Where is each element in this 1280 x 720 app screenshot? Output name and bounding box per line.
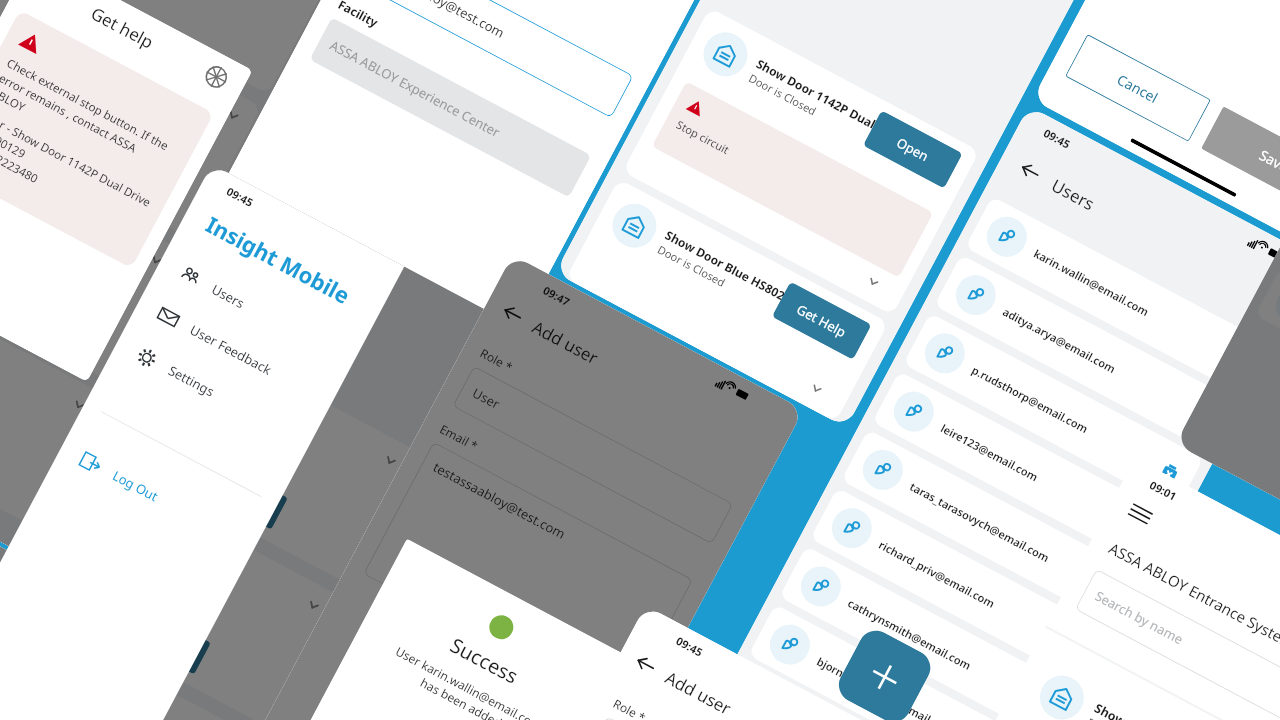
button[interactable]: Show Door 1142P Dual Drive [622,7,980,315]
staticText: Check external stop button. If the error… [0,55,181,188]
button[interactable]: Users [150,240,364,383]
staticText: Get help [87,1,158,54]
button[interactable]: Back [632,651,659,678]
staticText: bjorn.markstedt@email.com [814,653,956,720]
button[interactable]: Delete user [1156,460,1182,486]
staticText: Add user [528,315,603,369]
staticText: Role * [478,344,516,375]
staticText: No: 112223480 [0,135,41,187]
staticText: Save [1256,145,1280,177]
staticText: Show Door 1142P Dual Drive [754,55,910,148]
button[interactable]: Show Door Blue HS8020P [565,179,889,422]
staticText: Role * [611,695,649,720]
staticText: SC2_00129 [0,121,29,162]
staticText: User [469,384,504,413]
staticText: p.rudsthorp@email.com [969,362,1091,436]
button[interactable]: aditya.arya@email.com [934,254,1235,451]
staticText: Get Help [794,300,850,341]
button[interactable]: Cancel [1065,34,1211,142]
staticText: aditya.arya@email.com [1000,304,1119,376]
staticText: User karin.wallin@email.com has been add… [385,642,545,720]
staticText: Door is Closed [1084,714,1160,720]
staticText: Users [1048,174,1099,215]
staticText: Add user [661,666,736,720]
button[interactable]: Open [113,599,211,674]
staticText: 09:01 [1147,477,1180,504]
staticText: Email * [437,420,481,454]
staticText: richard_priv@email.com [876,537,998,611]
staticText: Show Door Blue HS8020P [663,226,801,310]
staticText: testassaabloy@test.com [369,0,508,42]
staticText: User Feedback [187,321,275,379]
button[interactable]: Delete user [1032,693,1058,719]
staticText: Success [446,631,523,690]
button[interactable]: Log Out [51,426,265,569]
staticText: Door - Show Door 1142P Dual Drive [0,106,154,211]
button[interactable]: bjorn.markstedt@email.com [748,604,1049,720]
staticText: 09:45 [1041,125,1074,152]
button[interactable]: User Feedback [128,281,342,424]
button[interactable]: Add user [832,624,937,720]
staticText: leire123@email.com [938,420,1041,484]
staticText: Facility [336,0,381,30]
button[interactable]: Back [1017,158,1044,185]
button[interactable]: cathrynsmith@email.com [779,546,1080,720]
staticText: karin.wallin@email.com [1031,246,1152,319]
staticText: Show Door 1142P [1091,699,1194,720]
staticText: Search by name [1092,587,1187,649]
button[interactable]: taras_tarasovych@email.com [841,429,1142,626]
button[interactable]: Delete user [1125,519,1151,544]
button[interactable]: Open [190,455,288,530]
staticText: Door is Closed [746,70,819,119]
button[interactable]: Open [863,110,963,189]
staticText: Log Out [109,466,161,505]
staticText: ASSA ABLOY Experience Center [327,36,503,141]
staticText: Stop circuit [674,117,732,157]
button[interactable]: richard_priv@email.com [810,487,1111,684]
staticText: 09:45 [673,633,706,660]
staticText: Open [894,133,932,165]
staticText: Door is Closed [655,242,728,290]
staticText: Settings [165,361,218,401]
staticText: 09:47 [540,282,573,309]
staticText: testassaabloy@test.com [430,458,569,543]
staticText: ASSA ABLOY Entrance Systems [1106,538,1280,656]
staticText: Insight Mobile [201,209,356,310]
button[interactable]: karin.wallin@email.com [965,196,1266,393]
staticText: 09:45 [224,183,257,210]
button[interactable]: Menu [1125,499,1155,529]
staticText: Users [209,280,248,312]
staticText: Open [220,476,258,508]
button[interactable]: Settings [107,321,321,464]
button[interactable]: Get Help [772,281,872,360]
button[interactable]: leire123@email.com [872,371,1173,568]
button[interactable]: Save [1201,106,1280,214]
staticText: Cancel [1114,70,1162,107]
button[interactable]: p.rudsthorp@email.com [903,313,1204,509]
button[interactable]: Delete user [1094,577,1120,603]
staticText: taras_tarasovych@email.com [907,479,1052,565]
button[interactable]: Delete user [1063,635,1089,661]
staticText: cathrynsmith@email.com [845,595,974,673]
button[interactable]: Show Door 1142P [955,649,1280,720]
